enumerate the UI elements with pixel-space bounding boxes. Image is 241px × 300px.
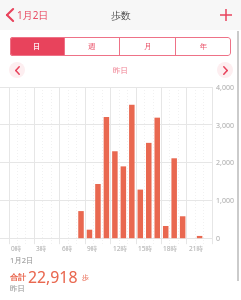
staticText: 0時	[11, 244, 22, 253]
staticText: 昨日	[10, 284, 25, 293]
staticText: 1月2日	[10, 255, 34, 265]
staticText: 1月2日	[17, 8, 49, 22]
button[interactable]: 1月2日	[0, 0, 55, 30]
staticText: 9時	[87, 244, 98, 253]
staticText: 4,000	[216, 83, 234, 93]
staticText: 0	[216, 234, 221, 244]
staticText: 15時	[138, 244, 152, 253]
staticText: 週	[88, 42, 96, 51]
staticText: 2,000	[216, 158, 234, 168]
button[interactable]: 週	[65, 37, 119, 56]
button[interactable]: Previous day	[9, 62, 25, 78]
button[interactable]: 年	[176, 37, 231, 56]
staticText: 3,000	[216, 121, 234, 131]
button[interactable]: 日	[10, 37, 64, 56]
staticText: 22,918	[28, 266, 78, 288]
staticText: 歩	[82, 273, 89, 282]
staticText: 年	[200, 42, 208, 51]
staticText: 3時	[36, 244, 47, 253]
staticText: 合計	[10, 272, 26, 282]
button[interactable]: Next day	[217, 62, 233, 78]
staticText: 日	[33, 42, 41, 51]
staticText: 6時	[62, 244, 73, 253]
staticText: 昨日	[113, 66, 128, 75]
button[interactable]: 月	[120, 37, 175, 56]
staticText: 1,000	[216, 196, 234, 206]
staticText: 12時	[113, 244, 127, 253]
staticText: 月	[144, 42, 152, 51]
staticText: 18時	[163, 244, 177, 253]
button[interactable]: Add	[211, 0, 241, 30]
staticText: 歩数	[111, 9, 131, 22]
staticText: 21時	[189, 244, 203, 253]
